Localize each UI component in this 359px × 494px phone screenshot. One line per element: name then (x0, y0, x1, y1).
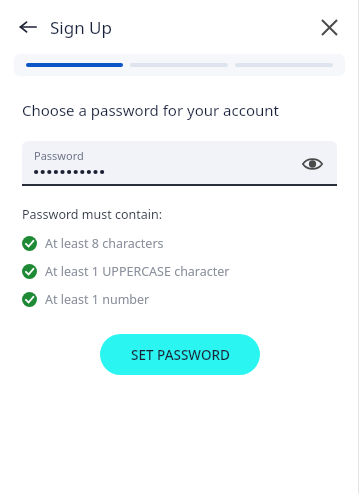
staticText: Sign Up (50, 16, 112, 39)
staticText: Password (34, 148, 84, 163)
staticText: Password must contain: (22, 206, 163, 223)
button[interactable]: Back (10, 9, 46, 45)
staticText: At least 8 characters (45, 235, 164, 252)
button[interactable]: Password (22, 141, 337, 186)
staticText: SET PASSWORD (131, 346, 230, 364)
button[interactable]: Show password (295, 147, 329, 181)
staticText: At least 1 number (45, 291, 150, 308)
staticText: At least 1 UPPERCASE character (45, 263, 230, 280)
button[interactable]: Close (311, 9, 347, 45)
button[interactable]: SET PASSWORD (100, 334, 260, 375)
staticText: Choose a password for your account (22, 100, 279, 120)
